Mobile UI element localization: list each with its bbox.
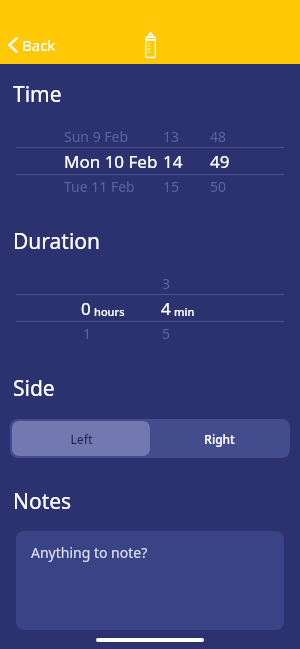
staticText: Mon 10 Feb [64,150,158,173]
staticText: hours [94,304,125,319]
button[interactable]: Back [0,31,64,59]
button[interactable]: 3 [0,272,300,344]
staticText: Side [13,374,55,403]
button[interactable]: Bottle feed [139,28,162,62]
staticText: Right [204,431,235,447]
staticText: 14 [163,150,183,173]
staticText: Tue 11 Feb [64,177,135,196]
staticText: 0 [81,297,91,320]
staticText: Sun 9 Feb [64,127,129,146]
staticText: Notes [13,487,72,516]
staticText: min [174,304,195,319]
button[interactable]: Anything to note? [16,531,284,630]
button[interactable]: Right [150,421,288,456]
staticText: 50 [210,177,227,196]
staticText: Anything to note? [31,543,148,562]
staticText: 48 [210,127,227,146]
staticText: 15 [163,177,180,196]
staticText: Duration [13,227,101,256]
button[interactable]: Sun 9 Feb [0,125,300,197]
staticText: 49 [210,150,230,173]
staticText: 13 [163,127,180,146]
staticText: 5 [162,324,171,343]
staticText: Time [13,80,62,109]
staticText: Left [70,431,93,447]
staticText: 4 [161,297,171,320]
staticText: 1 [83,324,92,343]
button[interactable]: Left [12,421,150,456]
staticText: 3 [162,274,171,293]
staticText: Back [22,35,56,55]
